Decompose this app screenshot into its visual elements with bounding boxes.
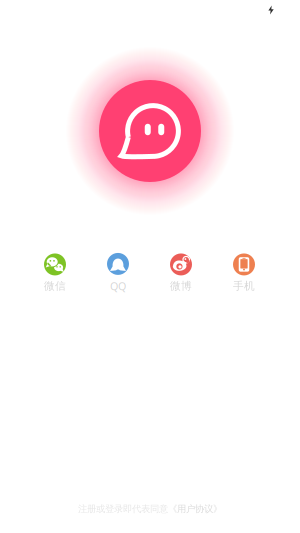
staticText: 手机 <box>233 279 255 292</box>
staticText: 注册或登录即代表同意 <box>78 503 168 515</box>
staticText: 《用户协议》 <box>168 503 222 515</box>
staticText: 微信 <box>44 279 66 292</box>
button[interactable]: QQ <box>86 252 149 294</box>
button[interactable]: 微博 <box>149 252 212 294</box>
button[interactable]: 微信 <box>23 252 86 294</box>
button[interactable]: Battery charging <box>268 5 274 14</box>
button[interactable]: 手机 <box>212 252 275 294</box>
button[interactable]: 注册或登录即代表同意 <box>78 502 222 516</box>
staticText: QQ <box>110 279 126 293</box>
staticText: 微博 <box>170 279 192 292</box>
